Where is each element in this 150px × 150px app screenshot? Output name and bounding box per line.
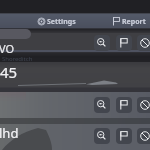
staticText: Shoreditch (2, 55, 33, 63)
staticText: VO (0, 41, 15, 56)
button[interactable]: Report (111, 14, 150, 29)
button[interactable]: Zoom in (94, 97, 110, 113)
button[interactable]: Zoom in (94, 35, 110, 51)
staticText: Settings (47, 17, 76, 27)
button[interactable]: Block (137, 128, 150, 144)
button[interactable]: Settings (36, 14, 76, 29)
button[interactable]: Report (116, 35, 132, 51)
staticText: 45 (0, 62, 18, 82)
staticText: lhd (0, 124, 19, 142)
button[interactable]: Report (116, 128, 132, 144)
button[interactable]: Report (116, 97, 132, 113)
button[interactable]: Block (137, 35, 150, 51)
staticText: Report (122, 17, 146, 27)
button[interactable]: Block (137, 97, 150, 113)
button[interactable]: Zoom in (94, 128, 110, 144)
